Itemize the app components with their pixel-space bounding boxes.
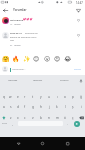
button[interactable]: e xyxy=(14,92,21,102)
button[interactable]: h xyxy=(37,102,45,112)
staticText: a xyxy=(3,105,5,109)
staticText: 😂 xyxy=(64,55,72,62)
button[interactable]: React xyxy=(53,54,62,63)
button[interactable]: ç xyxy=(69,113,77,123)
staticText: j xyxy=(49,105,50,109)
staticText: l xyxy=(65,105,66,109)
staticText: ?123 xyxy=(2,122,7,125)
staticText: z xyxy=(10,116,12,120)
staticText: ✨ xyxy=(23,55,31,62)
staticText: Yanıtla xyxy=(14,23,21,26)
button[interactable]: Like xyxy=(75,17,82,24)
staticText: Teşekkür xyxy=(33,79,43,82)
button[interactable]: Home xyxy=(36,137,49,150)
button[interactable]: Back xyxy=(1,6,10,15)
button[interactable]: Teşekkür xyxy=(25,75,51,86)
button[interactable]: Back xyxy=(12,137,25,150)
button[interactable]: React xyxy=(1,54,10,63)
button[interactable]: d xyxy=(14,102,21,112)
button[interactable]: x xyxy=(14,113,21,123)
button[interactable]: Recents xyxy=(61,137,74,150)
button[interactable]: m xyxy=(53,113,61,123)
button[interactable]: Kullanıcı xyxy=(51,75,77,86)
staticText: 3s xyxy=(10,44,13,47)
staticText: y xyxy=(40,95,42,99)
button[interactable]: Shift xyxy=(0,113,7,123)
button[interactable]: w xyxy=(7,92,14,102)
button[interactable]: j xyxy=(45,102,53,112)
staticText: 😊 xyxy=(33,55,40,62)
button[interactable]: k xyxy=(53,102,61,112)
button[interactable]: ş xyxy=(69,102,77,112)
button[interactable]: r xyxy=(21,92,29,102)
button[interactable]: afize.n0414 xyxy=(0,31,85,48)
staticText: 1s xyxy=(10,23,13,26)
button[interactable]: l xyxy=(61,102,69,112)
staticText: Merhaba xyxy=(8,79,18,82)
button[interactable]: z xyxy=(7,113,14,123)
staticText: c xyxy=(24,116,26,120)
staticText: 🤗 xyxy=(2,55,10,62)
button[interactable]: n xyxy=(45,113,53,123)
button[interactable]: Symbols xyxy=(0,119,9,129)
staticText: n xyxy=(48,116,50,120)
staticText: . xyxy=(67,122,68,126)
button[interactable]: v xyxy=(29,113,37,123)
staticText: 😍 xyxy=(54,55,61,62)
staticText: p xyxy=(72,95,74,99)
button[interactable]: b xyxy=(37,113,45,123)
button[interactable]: q xyxy=(0,92,7,102)
staticText: t xyxy=(32,95,34,99)
staticText: m xyxy=(56,116,59,120)
button[interactable]: React xyxy=(43,54,52,63)
button[interactable]: , xyxy=(9,119,16,129)
button[interactable]: s xyxy=(7,102,14,112)
button[interactable]: i xyxy=(77,102,85,112)
button[interactable]: ö xyxy=(61,113,69,123)
button[interactable]: u xyxy=(45,92,53,102)
staticText: ç xyxy=(72,116,74,120)
staticText: x xyxy=(17,116,19,120)
button[interactable]: Yorum ekle... xyxy=(10,65,81,74)
button[interactable]: Merhaba xyxy=(0,75,25,86)
staticText: 14:47 xyxy=(76,1,83,5)
button[interactable]: React xyxy=(11,54,20,63)
button[interactable]: t xyxy=(29,92,37,102)
button[interactable]: f xyxy=(21,102,29,112)
staticText: k xyxy=(56,105,58,109)
button[interactable]: p xyxy=(69,92,77,102)
button[interactable]: Share xyxy=(74,6,83,15)
button[interactable]: o xyxy=(61,92,69,102)
button[interactable]: React xyxy=(63,54,72,63)
staticText: s xyxy=(10,105,12,109)
button[interactable]: a xyxy=(0,102,7,112)
staticText: ö xyxy=(64,116,66,120)
button[interactable]: y xyxy=(37,92,45,102)
staticText: w xyxy=(9,95,12,99)
button[interactable]: Like xyxy=(75,32,82,39)
button[interactable]: Send xyxy=(72,119,82,129)
button[interactable]: ı xyxy=(53,92,61,102)
button[interactable]: React xyxy=(32,54,41,63)
staticText: 😮 xyxy=(44,55,51,62)
button[interactable]: c xyxy=(21,113,29,123)
staticText: etkinlik ve paylaşım olsun xyxy=(10,36,37,39)
button[interactable]: Backspace xyxy=(77,113,85,123)
button[interactable]: React xyxy=(22,54,31,63)
staticText: 🔥 xyxy=(12,55,20,62)
staticText: Paylaş xyxy=(74,68,81,71)
button[interactable]: ğ xyxy=(77,92,85,102)
button[interactable]: g xyxy=(29,102,37,112)
staticText: g xyxy=(32,105,34,109)
staticText: r xyxy=(24,95,26,99)
button[interactable]: Voice input xyxy=(77,75,85,86)
staticText: d xyxy=(17,105,19,109)
staticText: ı xyxy=(57,95,58,99)
button[interactable]: matchgrand xyxy=(0,16,85,28)
staticText: h xyxy=(40,105,42,109)
staticText: matchgrand xyxy=(10,19,24,22)
staticText: , xyxy=(12,122,13,126)
staticText: q xyxy=(3,95,5,99)
